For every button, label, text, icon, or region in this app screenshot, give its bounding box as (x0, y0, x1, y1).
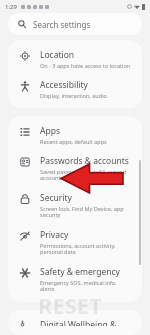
button[interactable]: Passwords & accounts (8, 150, 142, 187)
button[interactable]: Search settings (8, 13, 142, 35)
staticText: Passwords & accounts (40, 155, 129, 167)
staticText: Permissions, account activity, personal … (40, 242, 132, 256)
staticText: Safety & emergency (40, 266, 120, 278)
button[interactable]: Accessibility (8, 74, 142, 104)
staticText: Saved passwords, autofill, synced accoun… (40, 168, 132, 182)
staticText: Display, interaction, audio (40, 92, 107, 99)
button[interactable]: Apps (8, 120, 142, 150)
staticText: On - 3 apps have access to location (40, 62, 131, 69)
staticText: Accessibility (40, 79, 88, 91)
button[interactable]: Privacy (8, 224, 142, 261)
button[interactable]: Security (8, 187, 142, 224)
staticText: Digital Wellbeing & parental controls (40, 319, 132, 326)
staticText: Search settings (33, 19, 91, 30)
staticText: Screen lock, Find My Device, app securit… (40, 205, 132, 219)
staticText: Apps (40, 125, 60, 137)
staticText: Security (40, 192, 72, 204)
staticText: Recent apps, default apps (40, 138, 107, 145)
button[interactable]: Digital Wellbeing & parental controls (8, 314, 142, 331)
staticText: Location (40, 49, 75, 61)
staticText: 1:29 (5, 3, 17, 11)
staticText: RESET (38, 290, 102, 320)
staticText: Emergency SOS, medical info, alerts (40, 279, 132, 293)
staticText: Privacy (40, 229, 69, 241)
button[interactable]: Location (8, 44, 142, 74)
button[interactable]: Safety & emergency (8, 261, 142, 298)
